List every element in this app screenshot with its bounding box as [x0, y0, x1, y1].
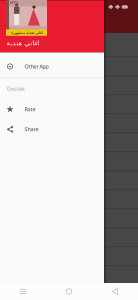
staticText: Destek — [7, 85, 25, 92]
staticText: MP3 — [9, 0, 17, 5]
button[interactable]: Back — [92, 283, 138, 300]
staticText: Other App — [24, 63, 48, 70]
button[interactable]: Share — [0, 119, 104, 139]
staticText: اغاني هندية — [6, 39, 39, 47]
button[interactable]: Rate — [0, 99, 104, 119]
staticText: Rate — [24, 106, 35, 113]
staticText: Share — [24, 126, 38, 133]
button[interactable]: Other App — [0, 55, 104, 77]
button[interactable]: Back — [92, 283, 138, 300]
staticText: اغاني هندية مشهورة — [10, 30, 42, 35]
button[interactable]: Recent apps — [0, 283, 46, 300]
button[interactable]: Home — [46, 283, 92, 300]
button[interactable]: Home — [46, 283, 92, 300]
button[interactable]: Recent apps — [0, 283, 46, 300]
